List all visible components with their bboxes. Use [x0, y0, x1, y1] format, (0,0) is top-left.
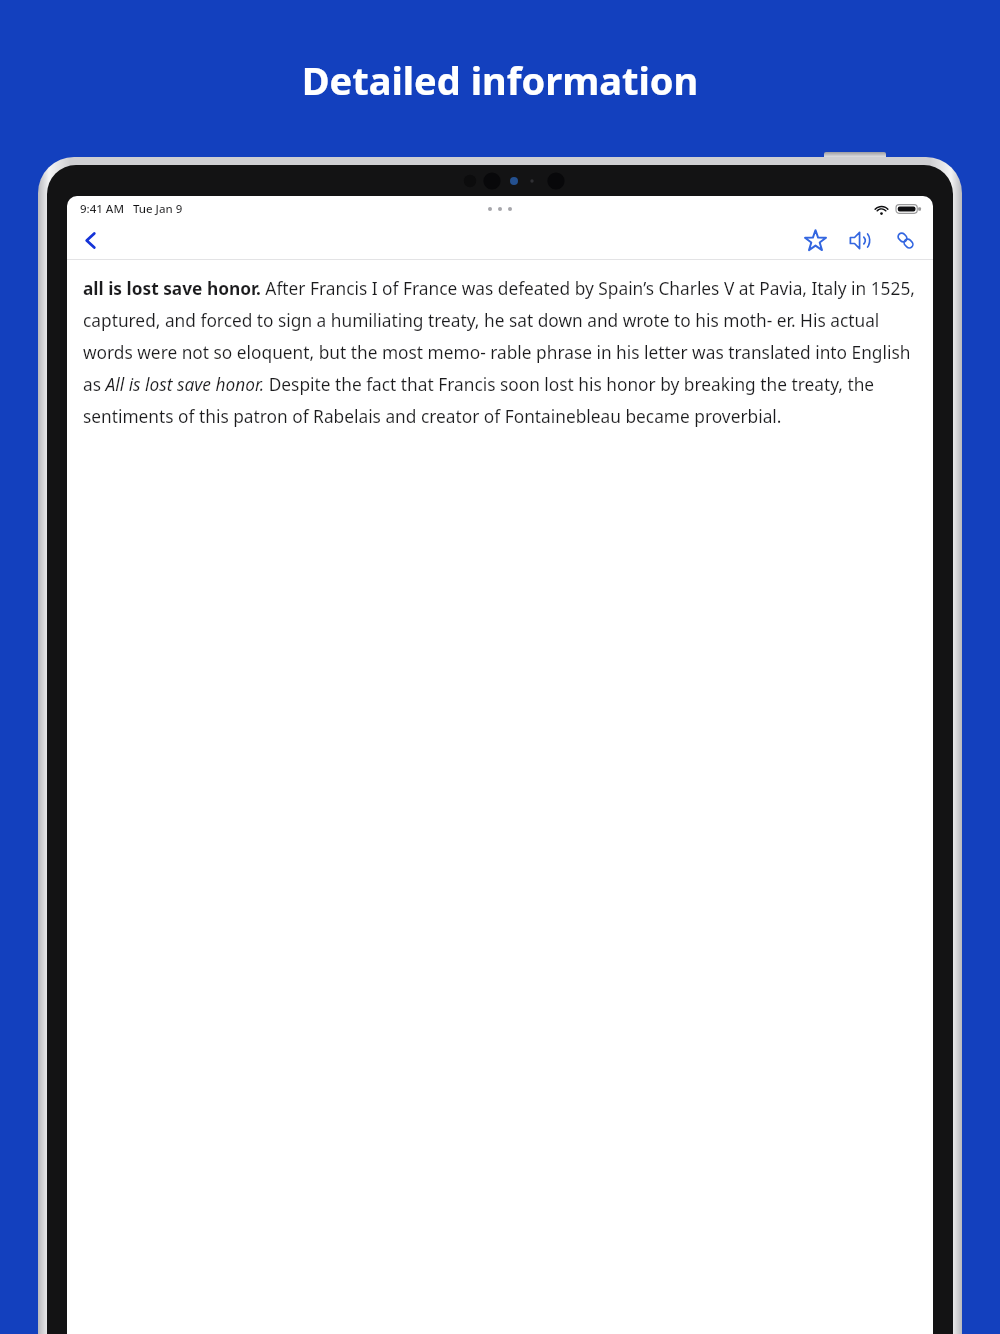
staticText: all is lost save honor. After Francis I …: [83, 277, 917, 428]
staticText: 9:41 AM Tue Jan 9: [80, 201, 183, 217]
button[interactable]: Add to favorites: [795, 222, 835, 259]
staticText: Detailed information: [0, 54, 1000, 106]
button[interactable]: Pronounce word: [840, 222, 880, 259]
button[interactable]: Copy link: [885, 222, 925, 259]
button[interactable]: Back: [69, 222, 111, 259]
